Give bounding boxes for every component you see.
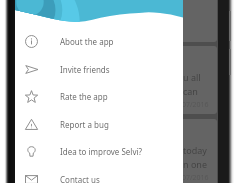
staticText: 07/2016 bbox=[182, 173, 209, 183]
button[interactable] bbox=[169, 0, 217, 42]
button[interactable]: About the app bbox=[15, 27, 183, 55]
button[interactable]: Invite friends bbox=[15, 55, 183, 83]
button[interactable]: Report a bug bbox=[15, 110, 183, 138]
staticText: Idea to improve Selvi? bbox=[60, 146, 143, 157]
staticText: Contact us bbox=[60, 174, 100, 183]
button[interactable]: u all bbox=[169, 46, 217, 114]
staticText: 07/2016 bbox=[182, 100, 209, 110]
staticText: About the app bbox=[60, 36, 114, 47]
button[interactable]: today bbox=[169, 119, 217, 183]
staticText: today bbox=[183, 144, 207, 156]
staticText: n one bbox=[183, 158, 207, 170]
staticText: Report a bug bbox=[60, 119, 109, 130]
button[interactable]: Contact us bbox=[15, 165, 183, 183]
staticText: u all bbox=[183, 71, 201, 83]
button[interactable]: Idea to improve Selvi? bbox=[15, 137, 183, 165]
staticText: Invite friends bbox=[60, 64, 110, 75]
staticText: can bbox=[183, 85, 198, 97]
staticText: Rate the app bbox=[60, 91, 108, 102]
button[interactable]: Rate the app bbox=[15, 82, 183, 110]
